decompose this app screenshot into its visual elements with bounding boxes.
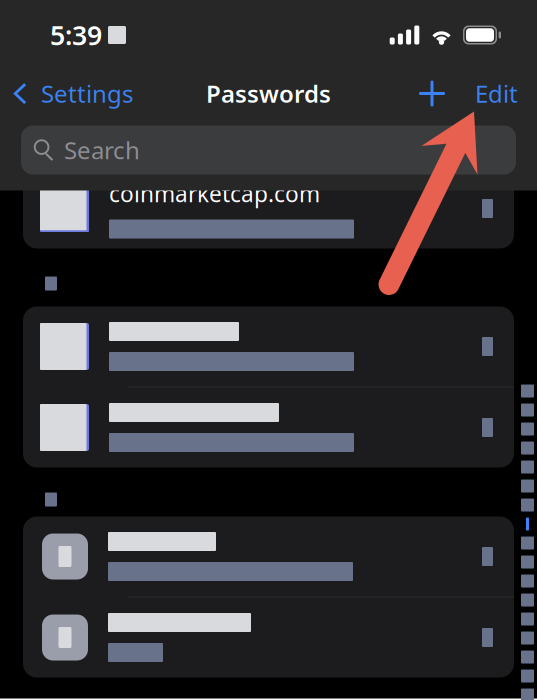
button[interactable]: coinmarketcap.com [23, 168, 514, 248]
button[interactable]: Search [21, 125, 516, 174]
button[interactable] [23, 597, 514, 677]
button[interactable]: Settings [0, 70, 143, 116]
staticText: Settings [41, 78, 133, 109]
staticText: Passwords [206, 78, 331, 109]
staticText: Search [64, 134, 140, 166]
button[interactable] [23, 306, 514, 386]
button[interactable] [23, 516, 514, 596]
button[interactable]: Edit [461, 70, 532, 116]
staticText: coinmarketcap.com [109, 178, 320, 208]
staticText: Edit [475, 78, 518, 109]
button[interactable]: Section index [521, 384, 534, 700]
button[interactable]: Add password [409, 70, 455, 116]
button[interactable] [23, 387, 514, 467]
staticText: 5:39 [50, 17, 102, 53]
